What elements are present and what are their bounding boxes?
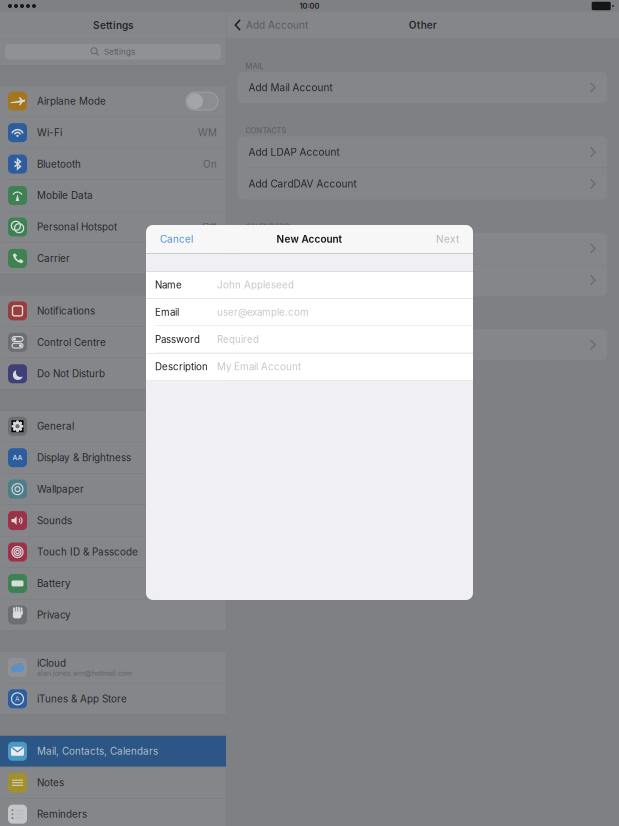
staticText: Email: [155, 306, 179, 318]
button[interactable]: Add LDAP Account: [237, 136, 607, 168]
staticText: Notifications: [37, 305, 95, 317]
staticText: AA: [12, 454, 22, 462]
button[interactable]: iCloud: [0, 652, 226, 683]
button[interactable]: A: [0, 683, 226, 715]
button[interactable]: Sounds: [0, 505, 226, 536]
staticText: Mobile Data: [37, 190, 93, 201]
staticText: Description: [155, 361, 208, 372]
staticText: Bluetooth: [37, 158, 81, 170]
staticText: Airplane Mode: [37, 95, 106, 107]
staticText: Touch ID & Passcode: [37, 546, 138, 558]
button[interactable]: Add Subscribed Calendar: [237, 264, 607, 296]
staticText: Wi-Fi: [37, 127, 62, 139]
button[interactable]: Add Account: [226, 13, 308, 37]
staticText: John Appleseed: [217, 279, 294, 291]
staticText: Privacy: [37, 609, 71, 621]
staticText: Mail, Contacts, Calendars: [37, 745, 158, 757]
button[interactable]: Mobile Data: [0, 180, 226, 211]
staticText: iCloud: [37, 657, 66, 669]
staticText: Other: [409, 19, 437, 31]
button[interactable]: Notes: [0, 767, 226, 799]
staticText: Add CalDAV Account: [248, 242, 348, 254]
staticText: alan.jones.wm@hotmail.com: [37, 669, 132, 677]
button[interactable]: Add Mail Account: [237, 72, 607, 103]
staticText: Battery: [37, 577, 71, 589]
staticText: MAIL: [245, 61, 263, 70]
staticText: Notes: [37, 777, 64, 789]
button[interactable]: Touch ID & Passcode: [0, 536, 226, 568]
button[interactable]: Personal Hotspot: [0, 211, 226, 243]
button[interactable]: Notifications: [0, 295, 226, 327]
button[interactable]: Airplane Mode: [0, 86, 226, 117]
staticText: Add LDAP Account: [248, 146, 339, 158]
button[interactable]: Wi-Fi: [0, 117, 226, 149]
staticText: Add Subscribed Calendar: [248, 274, 369, 286]
button[interactable]: Add CardDAV Account: [237, 168, 607, 199]
button[interactable]: Wallpaper: [0, 474, 226, 505]
staticText: Required: [217, 333, 259, 345]
staticText: General: [37, 420, 74, 432]
staticText: A: [15, 695, 20, 703]
staticText: Settings: [93, 19, 133, 31]
staticText: Display & Brightness: [37, 452, 131, 464]
staticText: Add macOS Server Account: [248, 339, 382, 351]
staticText: iTunes & App Store: [37, 693, 127, 705]
staticText: user@example.com: [217, 306, 309, 318]
staticText: Control Centre: [37, 336, 106, 348]
button[interactable]: Add CalDAV Account: [237, 233, 607, 264]
staticText: CONTACTS: [245, 126, 286, 135]
staticText: Cancel: [160, 233, 193, 245]
button[interactable]: Privacy: [0, 599, 226, 631]
button[interactable]: Reminders: [0, 799, 226, 826]
staticText: Reminders: [37, 808, 87, 820]
staticText: On: [203, 158, 217, 170]
staticText: Add CardDAV Account: [248, 178, 356, 190]
staticText: My Email Account: [217, 361, 301, 372]
button[interactable]: Bluetooth: [0, 149, 226, 180]
button[interactable]: AA: [0, 442, 226, 474]
button[interactable]: Mail, Contacts, Calendars: [0, 736, 226, 767]
button[interactable]: Cancel: [146, 226, 193, 252]
staticText: SERVERS: [245, 319, 278, 328]
staticText: Wallpaper: [37, 483, 84, 495]
staticText: CALENDARS: [245, 222, 289, 231]
staticText: Personal Hotspot: [37, 221, 117, 233]
button[interactable]: Carrier: [0, 243, 226, 274]
staticText: Do Not Disturb: [37, 368, 105, 380]
staticText: Sounds: [37, 515, 72, 526]
staticText: Next: [436, 233, 459, 245]
staticText: WM: [198, 127, 217, 139]
staticText: Name: [155, 279, 182, 291]
staticText: Add Mail Account: [248, 81, 332, 94]
button[interactable]: Battery: [0, 568, 226, 599]
staticText: 10:00: [299, 1, 319, 10]
button[interactable]: Add macOS Server Account: [237, 329, 607, 360]
button[interactable]: Control Centre: [0, 327, 226, 358]
button[interactable]: Do Not Disturb: [0, 358, 226, 390]
staticText: Password: [155, 333, 200, 345]
staticText: Carrier: [37, 252, 70, 264]
button[interactable]: Next: [436, 226, 473, 252]
button[interactable]: General: [0, 411, 226, 442]
staticText: Off: [202, 221, 217, 233]
staticText: Add Account: [246, 19, 308, 31]
staticText: New Account: [276, 233, 342, 245]
staticText: Settings: [104, 47, 135, 57]
